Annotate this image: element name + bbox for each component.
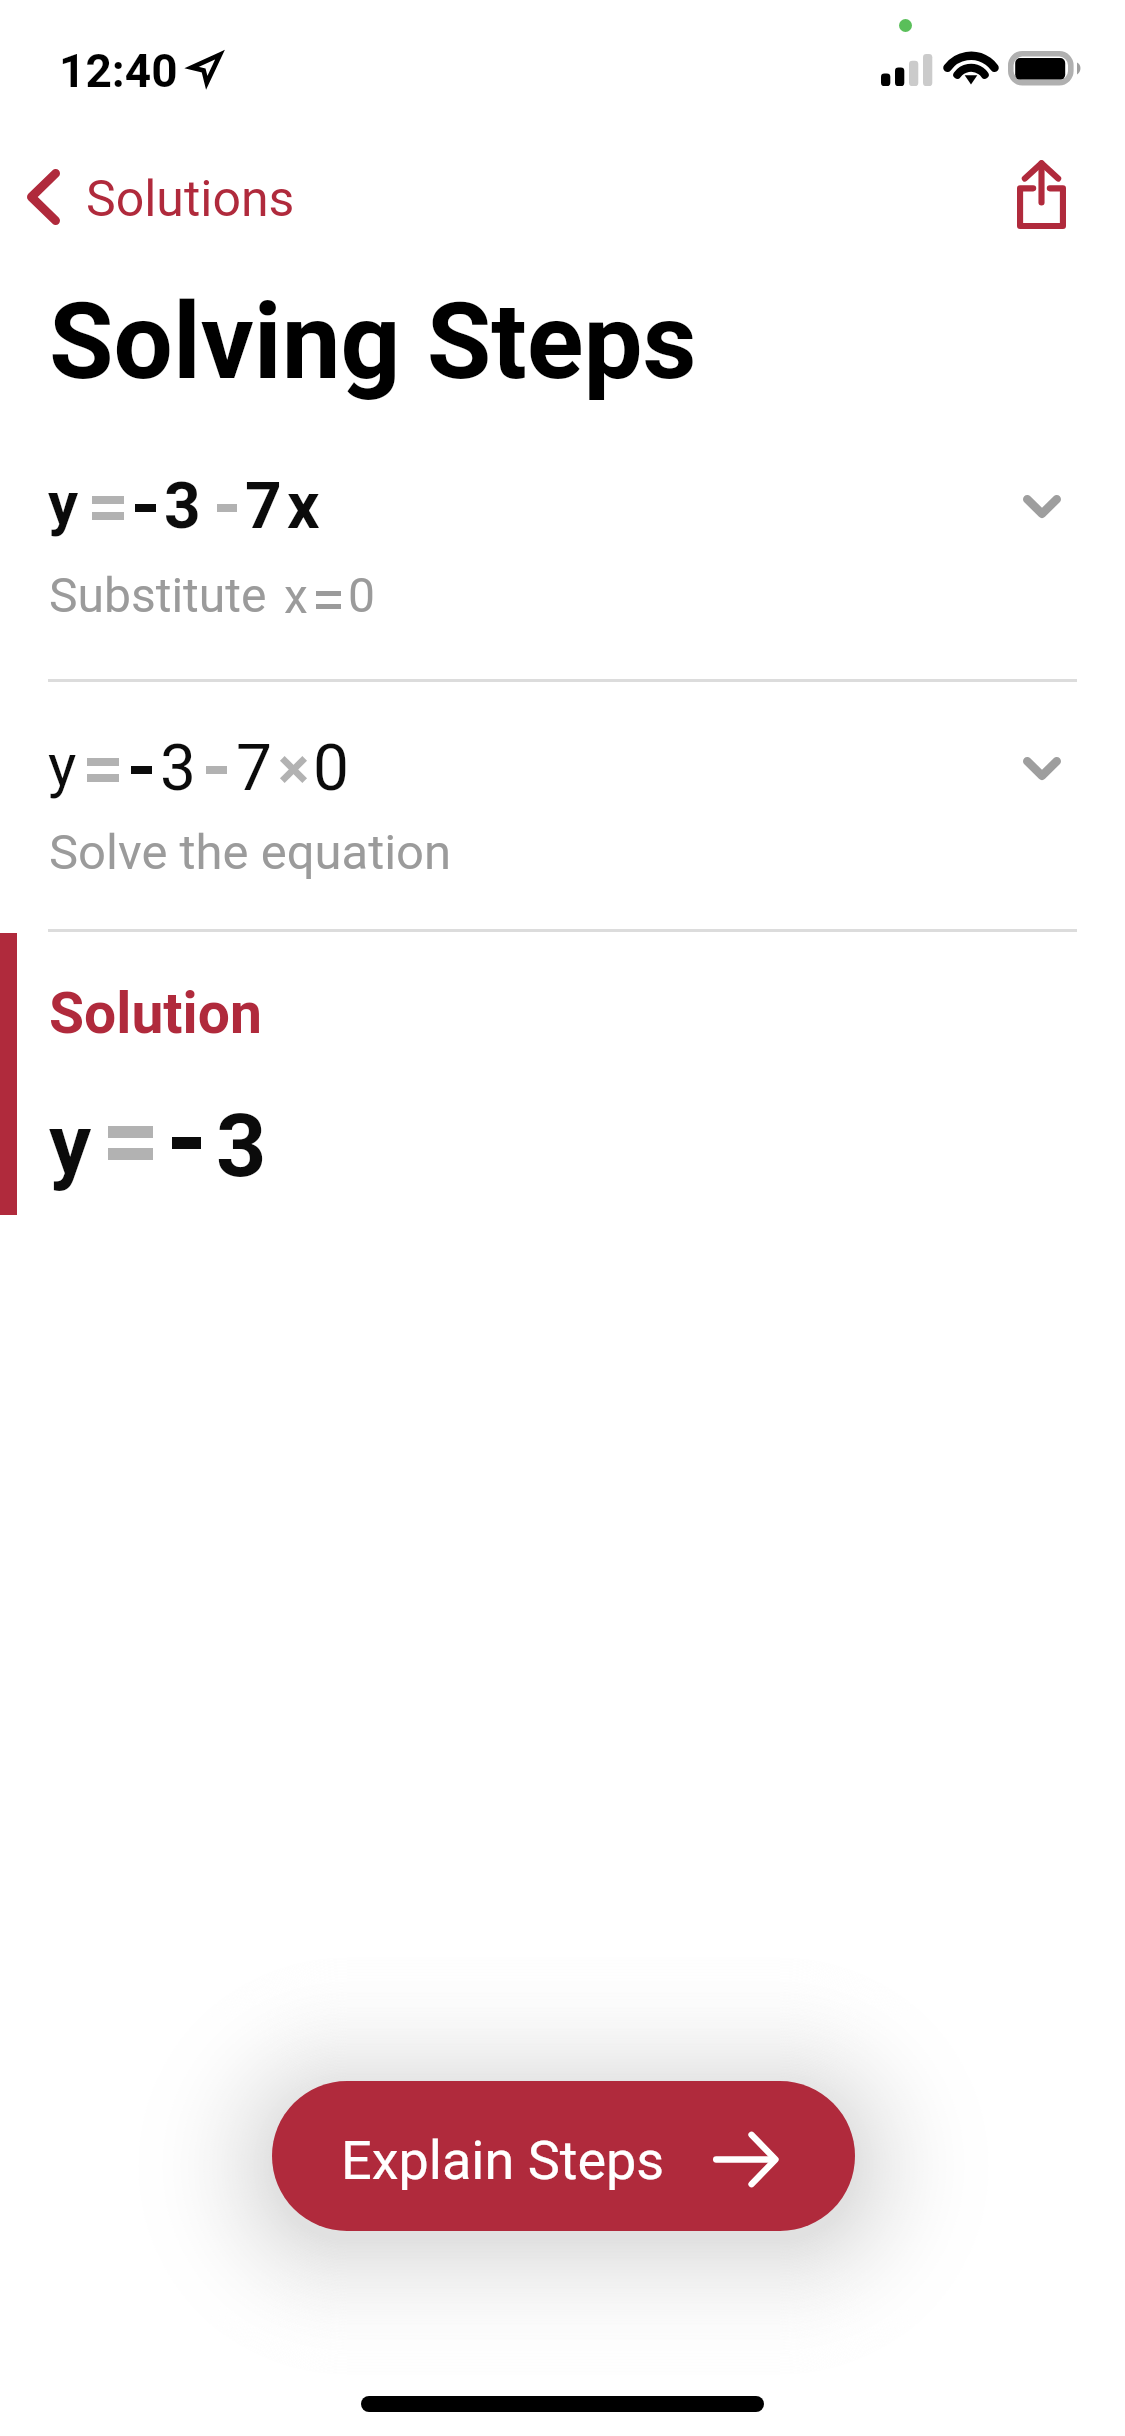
staticText: y <box>48 730 77 800</box>
button[interactable]: Expand step <box>1002 466 1082 546</box>
staticText: Solutions <box>86 170 295 229</box>
button[interactable]: Explain Steps <box>272 2081 855 2231</box>
staticText: Substitute <box>49 567 267 623</box>
button[interactable]: Solutions <box>6 150 312 244</box>
staticText: 7 <box>245 469 282 544</box>
staticText: 0 <box>313 731 349 806</box>
staticText: 12:40 <box>59 44 178 98</box>
staticText: 3 <box>164 469 201 544</box>
staticText: y <box>48 468 79 538</box>
staticText: Solving Steps <box>49 281 697 404</box>
staticText: 3 <box>216 1094 267 1197</box>
button[interactable] <box>0 682 1125 930</box>
staticText: x <box>284 568 308 624</box>
staticText: Explain Steps <box>341 2129 665 2192</box>
staticText: Solve the equation <box>49 824 452 881</box>
button[interactable] <box>0 432 1125 680</box>
button[interactable]: Expand step <box>1002 728 1082 808</box>
button[interactable]: Share <box>993 146 1089 242</box>
staticText: 3 <box>160 731 196 806</box>
staticText: 7 <box>236 731 272 806</box>
staticText: x <box>287 469 320 544</box>
staticText: y <box>49 1095 92 1193</box>
staticText: 0 <box>348 567 375 623</box>
staticText: Solution <box>49 980 262 1047</box>
